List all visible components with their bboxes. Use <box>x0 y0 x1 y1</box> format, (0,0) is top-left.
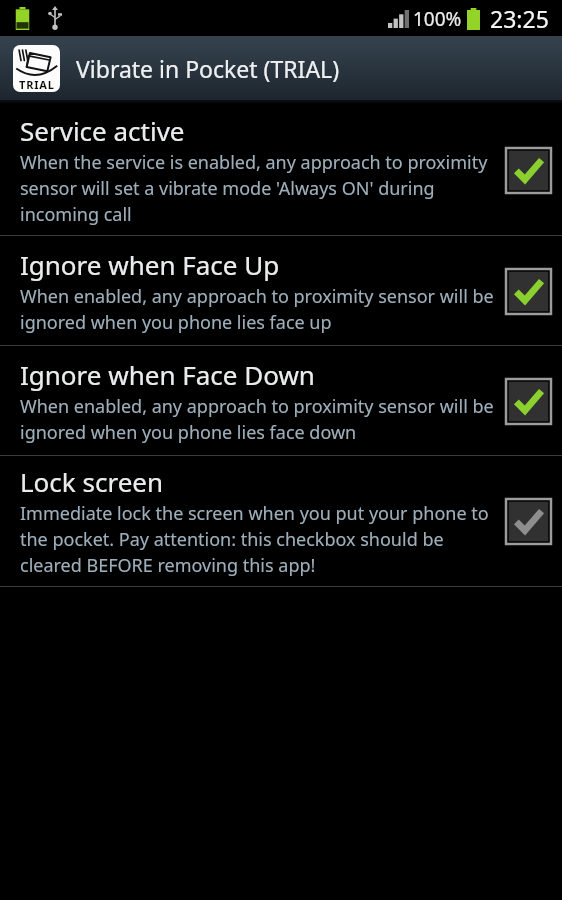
staticText: When enabled, any approach to proximity … <box>20 284 495 335</box>
staticText: Vibrate in Pocket (TRIAL) <box>76 53 340 84</box>
button[interactable]: Lock screen <box>0 456 562 586</box>
staticText: Immediate lock the screen when you put y… <box>20 501 495 578</box>
staticText: Service active <box>20 113 185 148</box>
button[interactable]: Ignore when Face Down checkbox <box>505 378 551 424</box>
button[interactable]: Ignore when Face Up <box>0 236 562 345</box>
staticText: 100% <box>413 6 462 32</box>
button[interactable]: Ignore when Face Down <box>0 346 562 455</box>
staticText: When the service is enabled, any approac… <box>20 150 495 227</box>
staticText: Ignore when Face Up <box>20 247 280 282</box>
staticText: 23:25 <box>490 3 549 34</box>
staticText: When enabled, any approach to proximity … <box>20 394 495 445</box>
button[interactable]: Ignore when Face Up checkbox <box>505 268 551 314</box>
staticText: Lock screen <box>20 464 164 499</box>
button[interactable]: Service active <box>0 104 562 235</box>
button[interactable]: Lock screen checkbox <box>505 498 551 544</box>
staticText: TRIAL <box>19 77 55 92</box>
staticText: Ignore when Face Down <box>20 357 315 392</box>
button[interactable]: Service active checkbox <box>505 147 551 193</box>
